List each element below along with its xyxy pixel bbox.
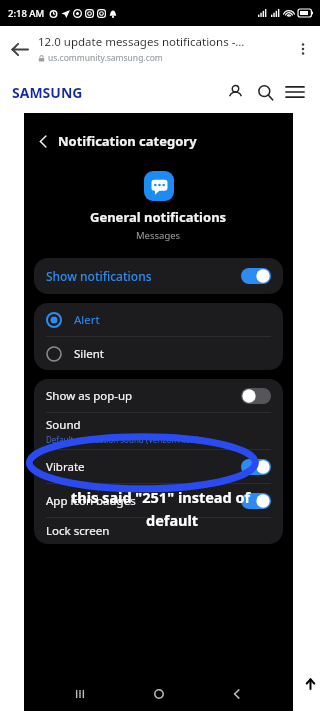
button[interactable]: More options: [286, 32, 320, 66]
staticText: Silent: [74, 346, 104, 362]
staticText: SAMSUNG: [12, 83, 83, 102]
staticText: Messages: [136, 229, 181, 242]
button[interactable]: 12.0 update messages notifications -…: [38, 34, 286, 64]
staticText: Show as pop-up: [46, 388, 133, 404]
button[interactable]: Scroll to top: [302, 675, 318, 691]
button[interactable]: Recents: [58, 679, 102, 709]
button[interactable]: Back: [215, 679, 259, 709]
staticText: Default notification sound (Verizon Aler…: [46, 434, 199, 445]
staticText: Alert: [74, 312, 100, 328]
staticText: Lock screen: [46, 523, 110, 539]
button[interactable]: Vibrate: [34, 449, 283, 483]
button[interactable]: Menu: [282, 79, 308, 105]
staticText: this said "251" instead of: [71, 487, 251, 507]
staticText: General notifications: [90, 208, 227, 226]
button[interactable]: App icon badges: [34, 483, 283, 517]
button[interactable]: Account: [222, 79, 248, 105]
button[interactable]: Show as pop-up: [34, 379, 283, 412]
staticText: 2:18 AM: [8, 7, 45, 20]
button[interactable]: Search: [252, 79, 278, 105]
button[interactable]: Home: [137, 679, 181, 709]
button[interactable]: Show notifications: [34, 258, 283, 294]
button[interactable]: Navigate up: [32, 130, 54, 152]
staticText: Show notifications: [46, 268, 152, 284]
button[interactable]: Sound: [34, 413, 283, 449]
staticText: Sound: [46, 417, 81, 433]
staticText: Vibrate: [46, 459, 85, 475]
staticText: us.community.samsung.com: [48, 52, 163, 64]
staticText: default: [146, 510, 199, 530]
button[interactable]: Back: [0, 30, 38, 68]
button[interactable]: Alert: [34, 303, 283, 336]
button[interactable]: Silent: [34, 337, 283, 370]
staticText: 12.0 update messages notifications -…: [38, 34, 245, 50]
staticText: App icon badges: [46, 493, 136, 509]
staticText: Notification category: [58, 132, 197, 150]
button[interactable]: Lock screen: [34, 518, 283, 544]
